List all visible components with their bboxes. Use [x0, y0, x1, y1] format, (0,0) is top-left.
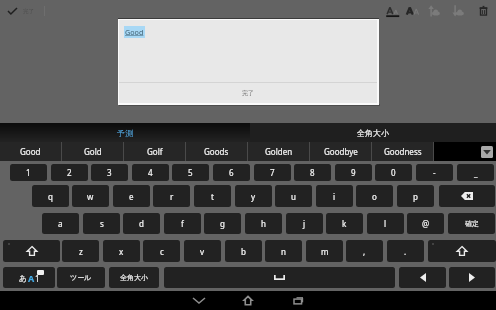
button[interactable]: Home	[238, 291, 258, 310]
staticText: Good	[20, 146, 41, 157]
staticText: 2	[67, 167, 72, 178]
button[interactable]: 7	[254, 164, 291, 181]
button[interactable]: Goodness	[372, 142, 433, 161]
button[interactable]: w	[72, 185, 109, 207]
staticText: 5	[188, 167, 193, 178]
staticText: ,	[363, 246, 366, 257]
button[interactable]: o	[356, 185, 393, 207]
button[interactable]: h	[245, 213, 282, 234]
button[interactable]: r	[153, 185, 190, 207]
button[interactable]: 完了	[0, 0, 44, 22]
staticText: y	[251, 191, 256, 202]
button[interactable]: m	[306, 240, 343, 262]
button[interactable]: Download	[446, 0, 468, 22]
button[interactable]: Golf	[124, 142, 185, 161]
staticText: e	[129, 191, 134, 202]
staticText: @	[422, 218, 430, 229]
button[interactable]: k	[326, 213, 363, 234]
button[interactable]: 全角大小	[109, 267, 159, 288]
button[interactable]: q	[32, 185, 69, 207]
staticText: 0	[391, 167, 396, 178]
button[interactable]: Golden	[248, 142, 309, 161]
button[interactable]: Goods	[186, 142, 247, 161]
button[interactable]: Space	[164, 267, 395, 288]
button[interactable]: Cursor left	[399, 267, 446, 288]
button[interactable]: z	[62, 240, 99, 262]
button[interactable]: 9	[335, 164, 372, 181]
button[interactable]: n	[265, 240, 302, 262]
button[interactable]: Back	[189, 291, 209, 310]
button[interactable]: @	[407, 213, 444, 234]
button[interactable]: Delete	[472, 0, 494, 22]
button[interactable]: Upload	[422, 0, 444, 22]
button[interactable]: f	[164, 213, 201, 234]
button[interactable]: Recent apps	[288, 291, 308, 310]
staticText: w	[87, 191, 94, 202]
button[interactable]: Increase text size	[401, 0, 423, 22]
button[interactable]: a	[42, 213, 79, 234]
staticText: s	[100, 218, 104, 229]
staticText: i	[333, 191, 336, 202]
button[interactable]: ,	[346, 240, 383, 262]
staticText: A	[28, 272, 35, 284]
staticText: 全角大小	[357, 128, 389, 138]
button[interactable]: あ	[3, 267, 55, 288]
staticText: o	[372, 191, 377, 202]
button[interactable]: e	[113, 185, 150, 207]
button[interactable]: 6	[213, 164, 250, 181]
button[interactable]: ツール	[57, 267, 105, 288]
button[interactable]: 確定	[448, 213, 495, 234]
button[interactable]: b	[225, 240, 262, 262]
staticText: m	[321, 246, 329, 257]
button[interactable]: i	[316, 185, 353, 207]
button[interactable]: 0	[375, 164, 412, 181]
button[interactable]: Goodbye	[310, 142, 371, 161]
staticText: _	[474, 167, 478, 178]
staticText: 確定	[465, 219, 479, 228]
button[interactable]: Good	[0, 142, 61, 161]
staticText: Goodness	[384, 146, 422, 157]
button[interactable]: 完了	[119, 83, 377, 103]
button[interactable]: 1	[10, 164, 47, 181]
button[interactable]: x	[103, 240, 140, 262]
button[interactable]: Gold	[62, 142, 123, 161]
button[interactable]: g	[204, 213, 241, 234]
button[interactable]: 2	[51, 164, 88, 181]
staticText: 9	[351, 167, 356, 178]
button[interactable]: Decrease text size	[381, 0, 403, 22]
button[interactable]: l	[367, 213, 404, 234]
button[interactable]: v	[184, 240, 221, 262]
button[interactable]: 全角大小	[250, 123, 496, 142]
staticText: v	[200, 246, 205, 257]
staticText: 1	[35, 273, 40, 284]
button[interactable]: Backspace	[439, 185, 495, 207]
staticText: Gold	[84, 146, 102, 157]
button[interactable]: .	[387, 240, 424, 262]
button[interactable]: Shift	[3, 240, 60, 262]
button[interactable]: -	[416, 164, 453, 181]
button[interactable]: Cursor right	[449, 267, 495, 288]
staticText: d	[139, 218, 144, 229]
button[interactable]: 8	[294, 164, 331, 181]
staticText: Golf	[147, 146, 163, 157]
button[interactable]: j	[286, 213, 323, 234]
button[interactable]: s	[83, 213, 120, 234]
button[interactable]: d	[123, 213, 160, 234]
button[interactable]: 予測	[0, 123, 250, 142]
button[interactable]: p	[397, 185, 434, 207]
button[interactable]: t	[194, 185, 231, 207]
staticText: ツール	[70, 273, 92, 282]
staticText: -	[433, 167, 436, 178]
button[interactable]: y	[235, 185, 272, 207]
button[interactable]: 4	[132, 164, 169, 181]
staticText: b	[241, 246, 246, 257]
button[interactable]: More suggestions	[481, 146, 493, 158]
button[interactable]: _	[457, 164, 494, 181]
button[interactable]: u	[275, 185, 312, 207]
button[interactable]: c	[143, 240, 180, 262]
button[interactable]: Shift	[428, 240, 496, 262]
button[interactable]: 3	[91, 164, 128, 181]
button[interactable]: 5	[172, 164, 209, 181]
staticText: Goodbye	[324, 146, 358, 157]
staticText: f	[181, 218, 184, 229]
